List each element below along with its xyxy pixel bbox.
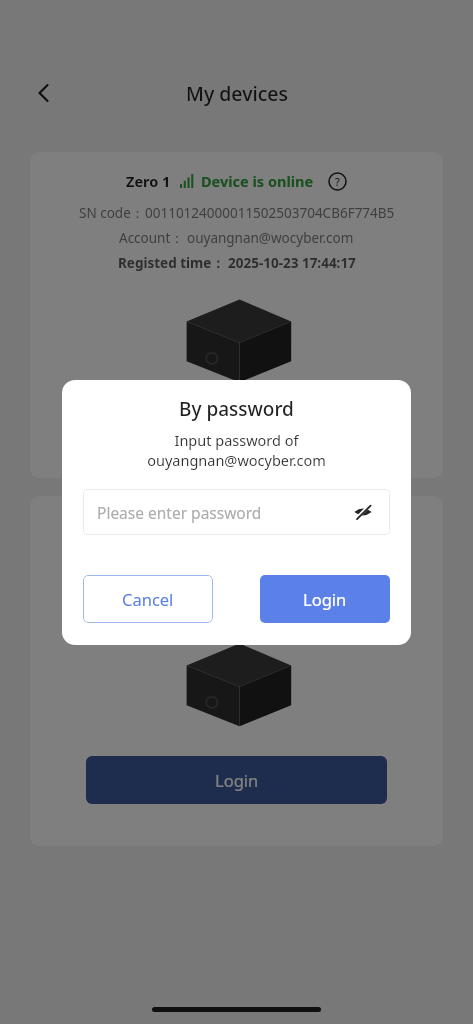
staticText: Login	[215, 769, 259, 791]
button[interactable]: Help	[326, 514, 348, 536]
staticText: Zero 1	[126, 171, 171, 191]
staticText: SN code：	[79, 204, 145, 222]
staticText: By password	[179, 396, 294, 422]
staticText: 2025-10-23 17:44:17	[228, 254, 356, 272]
staticText: Cancel	[122, 588, 174, 610]
button[interactable]: Zero 1	[30, 496, 443, 846]
staticText: ouyangnan@wocyber.com	[187, 573, 354, 591]
button[interactable]: Cancel	[83, 575, 213, 623]
staticText: Account：	[119, 229, 184, 247]
button[interactable]: Show password	[350, 499, 376, 525]
staticText: Device is online	[201, 515, 314, 535]
staticText: Registed time：	[118, 598, 225, 616]
staticText: Device is online	[201, 171, 314, 191]
button[interactable]	[0, 0, 473, 1024]
staticText: Account：	[119, 573, 184, 591]
button[interactable]: Login	[86, 756, 387, 804]
staticText: ?	[335, 174, 340, 189]
staticText: My devices	[186, 80, 288, 107]
staticText: Input password of ouyangnan@wocyber.com	[147, 430, 326, 471]
button[interactable]: Help	[326, 170, 348, 192]
staticText: 2025-10-23 18:02:32	[228, 598, 356, 616]
staticText: Please enter password	[97, 502, 350, 523]
staticText: Login	[303, 588, 347, 610]
staticText: ouyangnan@wocyber.com	[187, 229, 354, 247]
staticText: Zero 1	[126, 515, 171, 535]
staticText: Registed time：	[118, 254, 225, 272]
staticText: 00110124000011502503704CB6F774B5	[145, 204, 395, 222]
button[interactable]: Zero 1	[30, 152, 443, 478]
button[interactable]: Login	[260, 575, 390, 623]
button[interactable]: Please enter password	[83, 489, 390, 535]
button[interactable]: Back	[22, 71, 66, 115]
